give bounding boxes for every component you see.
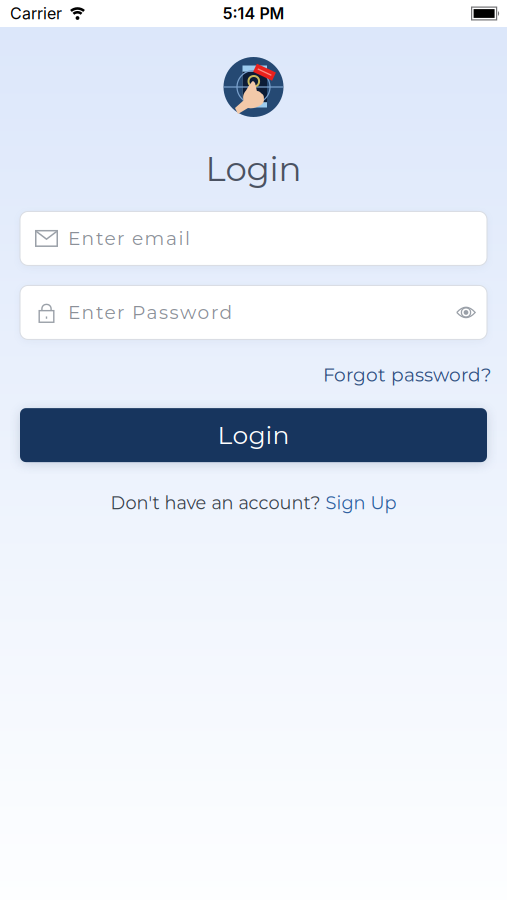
staticText: Enter email: [68, 227, 190, 250]
button[interactable]: Enter Password: [20, 285, 487, 339]
staticText: Forgot password?: [323, 363, 492, 386]
button[interactable]: Show password: [456, 306, 476, 319]
staticText: Don't have an account?: [110, 492, 325, 514]
button[interactable]: Login: [20, 408, 487, 462]
staticText: Carrier: [10, 4, 62, 23]
button[interactable]: Forgot password?: [323, 363, 492, 386]
button[interactable]: Sign Up: [325, 492, 396, 514]
staticText: Login: [217, 420, 289, 450]
staticText: Sign Up: [325, 492, 396, 514]
staticText: Enter Password: [68, 301, 232, 324]
button[interactable]: Enter email: [20, 211, 487, 265]
staticText: 5:14 PM: [222, 4, 284, 23]
staticText: Login: [205, 148, 301, 189]
